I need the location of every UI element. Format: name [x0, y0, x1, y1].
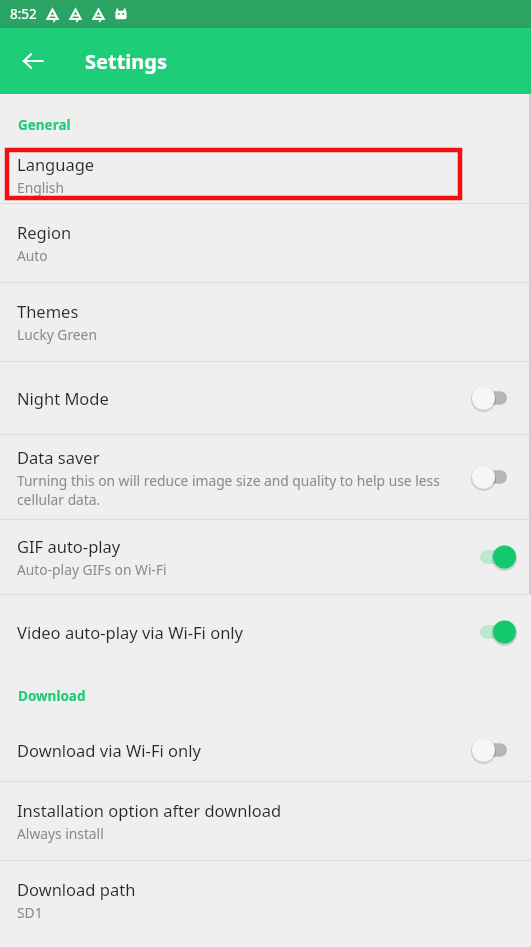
staticText: Download via Wi-Fi only [17, 739, 201, 761]
button[interactable]: Region [0, 204, 531, 282]
staticText: General [18, 116, 71, 134]
staticText: Language [17, 153, 95, 175]
staticText: Data saver [17, 446, 100, 468]
staticText: Download path [17, 878, 136, 900]
staticText: Themes [17, 300, 79, 322]
other: Toggle off [471, 737, 517, 763]
staticText: English [17, 178, 64, 197]
staticText: Auto-play GIFs on Wi-Fi [17, 560, 167, 579]
button[interactable]: Language [0, 147, 531, 203]
button[interactable]: Themes [0, 283, 531, 361]
staticText: Download [18, 687, 86, 705]
staticText: Always install [17, 824, 104, 843]
button[interactable]: Download path [0, 861, 531, 939]
staticText: Turning this on will reduce image size a… [17, 471, 463, 509]
staticText: Settings [85, 48, 167, 75]
button[interactable]: Download via Wi-Fi only [0, 719, 531, 781]
button[interactable]: Night Mode [0, 362, 531, 434]
button[interactable]: Video auto-play via Wi-Fi only [0, 595, 531, 669]
button[interactable]: Data saver [0, 435, 531, 519]
staticText: Night Mode [17, 387, 109, 409]
button[interactable]: Back [12, 40, 54, 82]
other: Toggle off [471, 385, 517, 411]
button[interactable]: GIF auto-play [0, 520, 531, 594]
staticText: Video auto-play via Wi-Fi only [17, 621, 244, 643]
staticText: Installation option after download [17, 799, 282, 821]
staticText: Lucky Green [17, 325, 97, 344]
staticText: GIF auto-play [17, 535, 121, 557]
other: Toggle on [471, 544, 517, 570]
staticText: 8:52 [10, 5, 37, 23]
other: Toggle off [471, 464, 517, 490]
other: Toggle on [471, 619, 517, 645]
staticText: SD1 [17, 903, 43, 922]
button[interactable]: Installation option after download [0, 782, 531, 860]
staticText: Auto [17, 246, 48, 265]
staticText: Region [17, 221, 72, 243]
